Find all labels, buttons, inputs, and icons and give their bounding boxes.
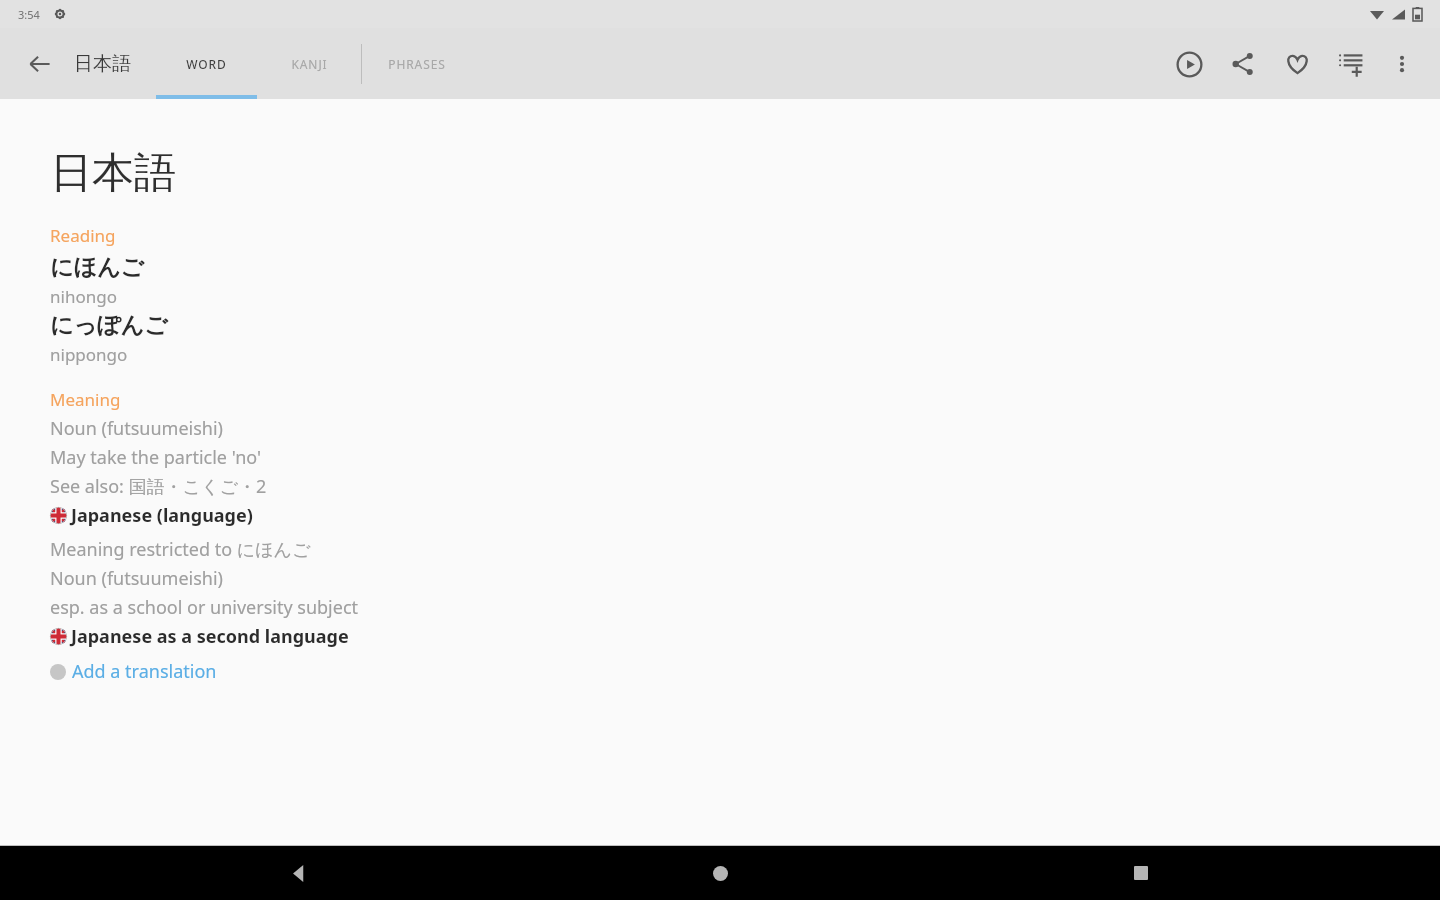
- staticText: May take the particle 'no': [50, 445, 262, 470]
- staticText: Add a translation: [72, 659, 217, 684]
- button[interactable]: Play: [1162, 37, 1216, 91]
- button[interactable]: Share: [1216, 37, 1270, 91]
- staticText: Noun (futsuumeishi): [50, 416, 223, 441]
- staticText: にっぽんご: [50, 311, 168, 340]
- button[interactable]: More options: [1378, 40, 1426, 88]
- button[interactable]: Back: [272, 846, 326, 900]
- staticText: See also: 国語・こくご・2: [50, 474, 267, 499]
- staticText: Japanese as a second language: [71, 624, 349, 649]
- staticText: Reading: [50, 224, 116, 247]
- button[interactable]: English: [50, 624, 349, 649]
- button[interactable]: PHRASES: [362, 28, 472, 99]
- staticText: KANJI: [291, 56, 328, 72]
- staticText: esp. as a school or university subject: [50, 595, 359, 620]
- button[interactable]: Back: [16, 40, 64, 88]
- button[interactable]: English: [50, 503, 253, 528]
- other: English: [50, 507, 67, 524]
- staticText: Meaning restricted to にほんご: [50, 537, 311, 562]
- staticText: 日本語: [74, 52, 131, 76]
- button[interactable]: Favorite: [1270, 37, 1324, 91]
- button[interactable]: KANJI: [258, 28, 361, 99]
- staticText: nippongo: [50, 343, 128, 366]
- staticText: にほんご: [50, 253, 145, 282]
- staticText: Japanese (language): [71, 503, 253, 528]
- button[interactable]: WORD: [155, 28, 258, 99]
- staticText: 3:54: [18, 7, 40, 22]
- staticText: nihongo: [50, 285, 117, 308]
- staticText: PHRASES: [388, 56, 446, 72]
- staticText: WORD: [186, 56, 227, 72]
- button[interactable]: Add to list: [1324, 37, 1378, 91]
- button[interactable]: Home: [693, 846, 747, 900]
- staticText: 日本語: [50, 147, 176, 200]
- other: English: [50, 628, 67, 645]
- button[interactable]: Add a translation: [50, 659, 217, 684]
- staticText: Meaning: [50, 388, 121, 411]
- staticText: Noun (futsuumeishi): [50, 566, 223, 591]
- button[interactable]: Recent apps: [1114, 846, 1168, 900]
